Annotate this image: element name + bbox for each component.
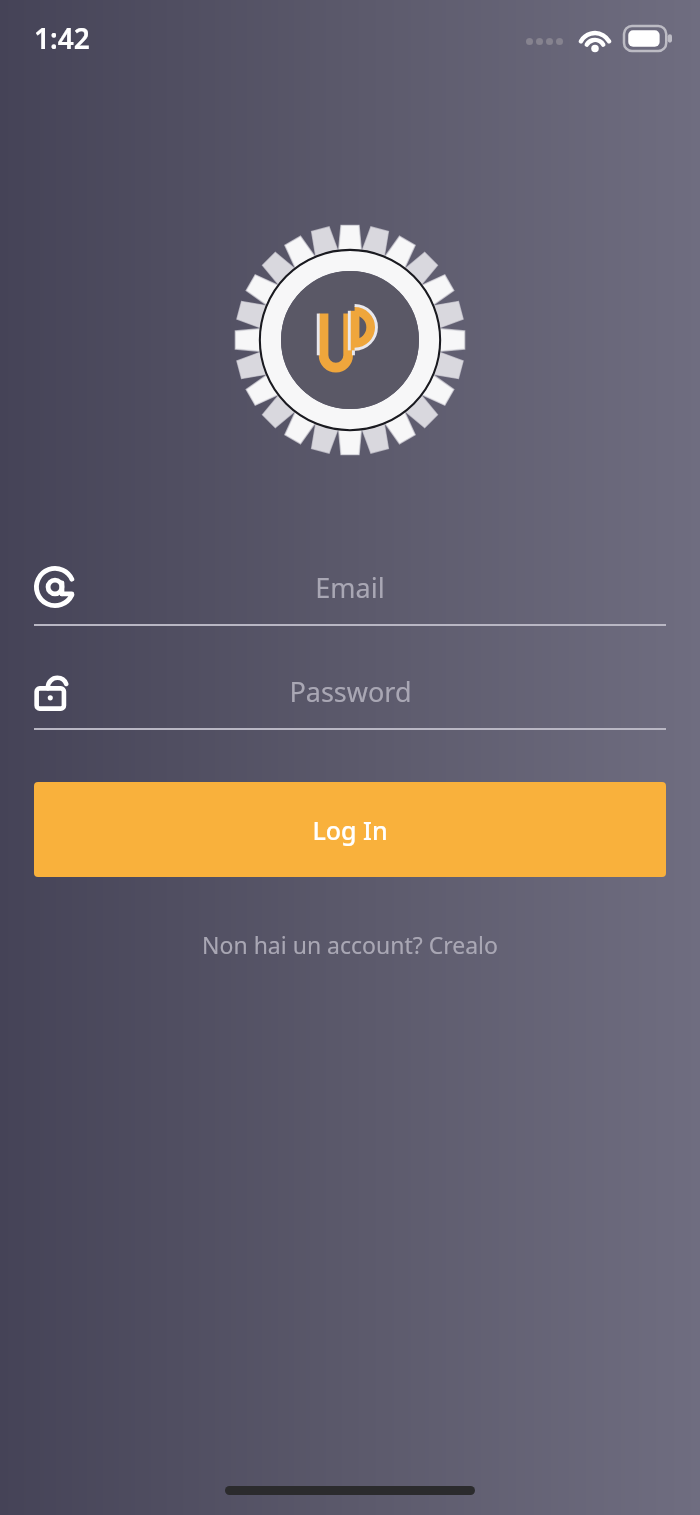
button[interactable]: Email bbox=[34, 550, 666, 626]
other: UP logo bbox=[235, 225, 465, 455]
staticText: Email bbox=[315, 569, 385, 606]
staticText: Non hai un account? Crealo bbox=[202, 929, 498, 960]
staticText: Password bbox=[289, 673, 412, 710]
button[interactable]: Log In bbox=[34, 782, 666, 877]
staticText: Log In bbox=[312, 813, 388, 847]
other: Password bbox=[34, 669, 78, 713]
other: Email bbox=[34, 566, 76, 608]
button[interactable]: Non hai un account? Crealo bbox=[0, 919, 700, 970]
staticText: 1:42 bbox=[34, 19, 90, 57]
button[interactable]: Password bbox=[34, 654, 666, 730]
